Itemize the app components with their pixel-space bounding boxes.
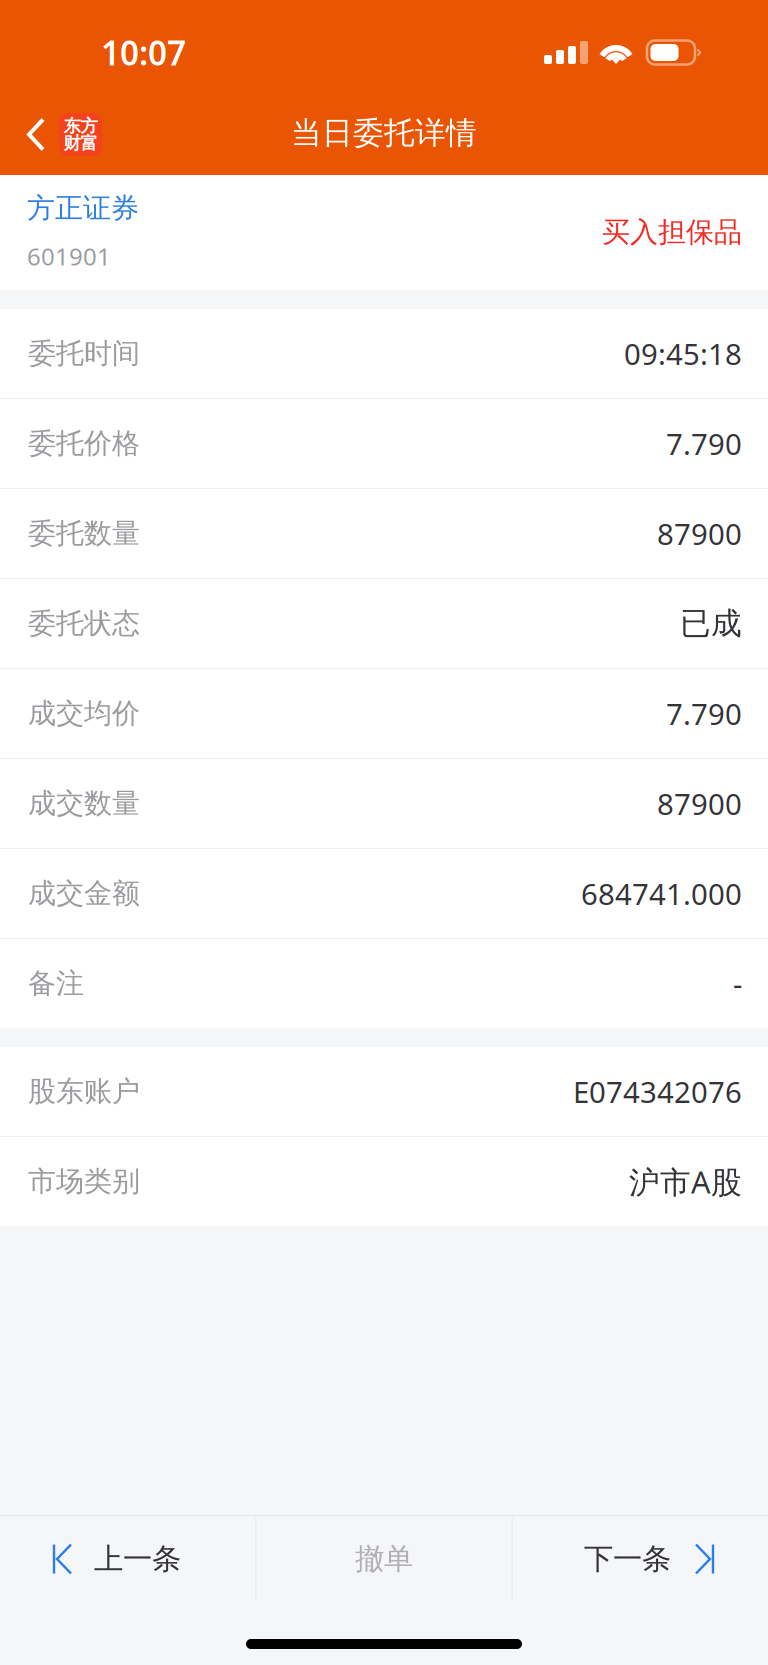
button[interactable]: 成交数量 [0,759,768,848]
staticText: 601901 [27,240,111,272]
staticText: 股东账户 [28,1074,140,1109]
staticText: 委托时间 [28,336,140,371]
button[interactable]: 委托数量 [0,489,768,578]
staticText: 买入担保品 [602,215,742,249]
staticText: 当日委托详情 [291,114,477,152]
staticText: 委托数量 [28,516,140,551]
button[interactable]: 委托时间 [0,309,768,398]
button[interactable]: 成交均价 [0,669,768,758]
staticText: 沪市A股 [629,1161,742,1202]
staticText: 方正证券 [27,191,139,225]
button[interactable]: 上一条 [0,1516,255,1602]
staticText: 7.790 [666,694,742,733]
button[interactable]: 委托状态 [0,579,768,668]
button[interactable]: 撤单 [256,1516,512,1602]
staticText: 成交数量 [28,786,140,821]
staticText: 成交金额 [28,876,140,911]
staticText: 委托价格 [28,426,140,461]
staticText: 市场类别 [28,1164,140,1199]
button[interactable]: 下一条 [513,1516,768,1602]
button[interactable]: 备注 [0,939,768,1028]
staticText: 下一条 [584,1541,671,1577]
button[interactable]: 市场类别 [0,1137,768,1226]
staticText: 7.790 [666,424,742,463]
staticText: 东方 [63,115,97,136]
staticText: 上一条 [94,1541,181,1577]
staticText: - [733,964,742,1003]
button[interactable]: 委托价格 [0,399,768,488]
staticText: 成交均价 [28,696,140,731]
staticText: 87900 [657,514,742,553]
staticText: 10:07 [101,30,186,75]
staticText: 备注 [28,966,84,1001]
button[interactable]: 股东账户 [0,1047,768,1136]
staticText: 委托状态 [28,606,140,641]
staticText: 财富 [63,132,97,154]
button[interactable]: 成交金额 [0,849,768,938]
staticText: 87900 [657,784,742,823]
button[interactable]: 返回 [0,91,126,175]
staticText: 已成 [680,605,742,642]
staticText: E074342076 [573,1072,742,1111]
staticText: 09:45:18 [624,334,742,373]
staticText: 684741.000 [581,874,742,913]
staticText: 撤单 [355,1541,413,1577]
